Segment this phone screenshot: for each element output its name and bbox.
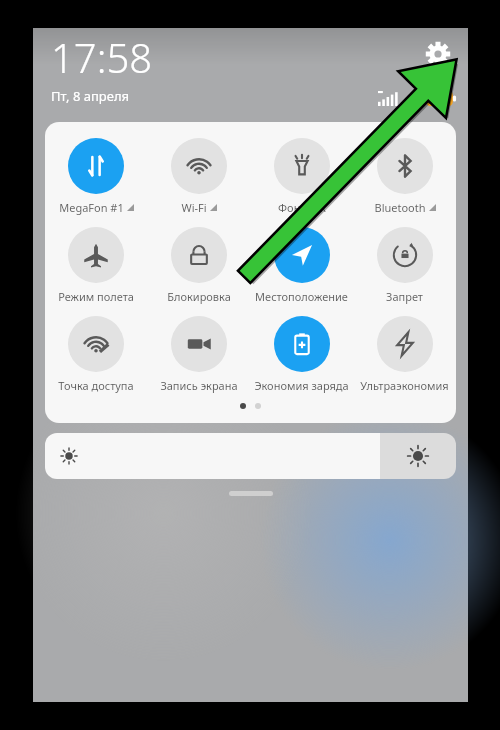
button[interactable]: Brightness bbox=[45, 433, 456, 479]
staticText: MegaFon #1 bbox=[59, 200, 124, 215]
button[interactable]: Экономия заряда bbox=[250, 314, 353, 395]
staticText: 17:58 bbox=[51, 30, 153, 84]
staticText: Режим полета bbox=[58, 289, 134, 304]
staticText: Точка доступа bbox=[58, 378, 134, 393]
staticText: Wi-Fi bbox=[181, 200, 207, 215]
button[interactable]: Запись экрана bbox=[147, 314, 250, 395]
button[interactable]: Bluetooth bbox=[353, 136, 456, 217]
button[interactable]: Фонарик bbox=[250, 136, 353, 217]
button[interactable]: Блокировка bbox=[147, 225, 250, 306]
staticText: Ультраэкономия bbox=[360, 378, 449, 393]
button[interactable]: Режим полета bbox=[45, 225, 147, 306]
button[interactable]: Ультраэкономия bbox=[353, 314, 456, 395]
button[interactable]: MegaFon #1 bbox=[45, 136, 147, 217]
staticText: Экономия заряда bbox=[254, 378, 349, 393]
staticText: Пт, 8 апреля bbox=[51, 87, 130, 105]
staticText: Запись экрана bbox=[160, 378, 238, 393]
staticText: Запрет автоповорота bbox=[353, 289, 456, 304]
staticText: Bluetooth bbox=[374, 200, 426, 215]
button[interactable]: Точка доступа bbox=[45, 314, 147, 395]
staticText: Фонарик bbox=[278, 200, 326, 215]
staticText: Блокировка bbox=[167, 289, 231, 304]
button[interactable]: Местоположение bbox=[250, 225, 353, 306]
button[interactable]: Запрет автоповорота bbox=[353, 225, 456, 306]
button[interactable]: Settings bbox=[418, 34, 458, 74]
staticText: Местоположение bbox=[255, 289, 348, 304]
button[interactable]: Wi-Fi bbox=[147, 136, 250, 217]
